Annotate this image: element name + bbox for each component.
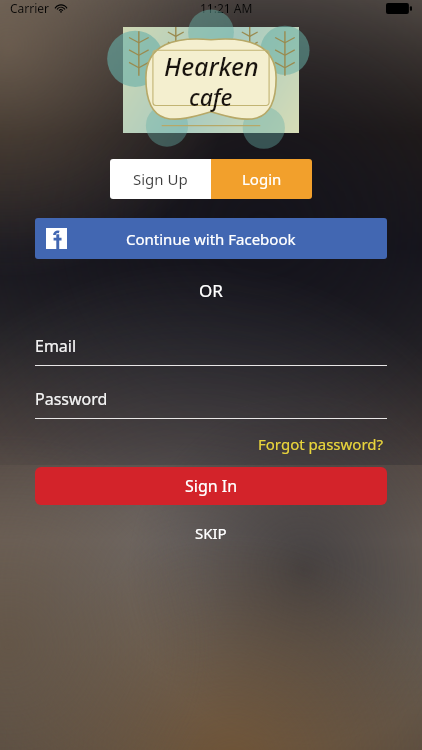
button[interactable]: Login: [211, 159, 312, 199]
staticText: Password: [35, 388, 108, 410]
button[interactable]: Sign In: [35, 467, 387, 505]
staticText: Sign In: [185, 475, 238, 497]
staticText: Hearken: [164, 49, 259, 83]
staticText: OR: [199, 279, 223, 302]
staticText: Login: [242, 169, 282, 189]
staticText: Carrier: [10, 0, 50, 16]
staticText: Forgot password?: [258, 434, 384, 454]
button[interactable]: SKIP: [181, 519, 241, 547]
button[interactable]: Sign Up: [110, 159, 211, 199]
staticText: Continue with Facebook: [126, 229, 296, 249]
staticText: Sign Up: [133, 169, 188, 189]
staticText: SKIP: [195, 523, 227, 543]
button[interactable]: Email: [35, 335, 387, 366]
button[interactable]: Continue with Facebook: [35, 218, 387, 259]
staticText: cafe: [189, 81, 233, 112]
button[interactable]: Password: [35, 388, 387, 419]
button[interactable]: Hearken cafe logo: [123, 27, 299, 133]
button[interactable]: Forgot password?: [255, 431, 387, 457]
staticText: 11:21 AM: [200, 0, 253, 16]
staticText: Email: [35, 335, 77, 357]
